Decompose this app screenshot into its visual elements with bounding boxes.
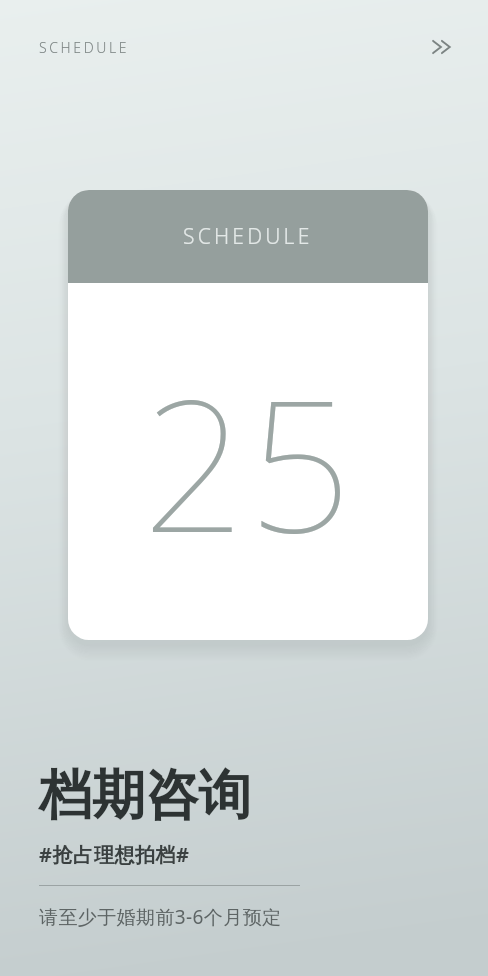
staticText: 请至少于婚期前3-6个月预定 <box>39 904 282 930</box>
button[interactable]: SCHEDULE <box>39 38 130 57</box>
staticText: SCHEDULE <box>39 38 130 57</box>
staticText: 25 <box>142 337 354 585</box>
button[interactable]: SCHEDULE <box>68 190 428 640</box>
staticText: SCHEDULE <box>183 222 313 251</box>
staticText: 档期咨询 <box>39 762 251 829</box>
staticText: #抢占理想拍档# <box>39 841 190 868</box>
button[interactable]: More <box>426 30 460 64</box>
